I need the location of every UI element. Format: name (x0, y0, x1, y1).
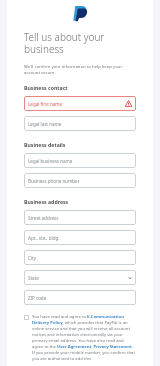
button[interactable]: Business phone number (24, 173, 136, 188)
staticText: Business address (24, 198, 69, 205)
button[interactable]: Legal first name (24, 96, 136, 111)
staticText: Tell us about your business (24, 30, 105, 56)
staticText: Apt., ste., bldg. (28, 235, 60, 241)
button[interactable]: ZIP code (24, 290, 136, 305)
staticText: ZIP code (28, 295, 47, 301)
staticText: We'll confirm your information to help k… (24, 63, 136, 75)
button[interactable]: Accept terms checkbox (24, 314, 136, 362)
button[interactable]: City (24, 250, 136, 265)
other: Accept terms checkbox (24, 315, 29, 320)
staticText: You have read and agree to E-Communicati… (32, 314, 136, 362)
button[interactable]: Apt., ste., bldg. (24, 230, 136, 245)
staticText: Street address (28, 215, 59, 221)
staticText: Business phone number (28, 178, 80, 184)
staticText: Business contact (24, 84, 68, 91)
staticText: Legal first name (28, 101, 63, 107)
staticText: City (28, 255, 36, 261)
button[interactable]: Legal last name (24, 116, 136, 131)
button[interactable]: Legal business name (24, 153, 136, 168)
button[interactable]: State (24, 270, 136, 285)
staticText: State (28, 275, 39, 281)
button[interactable]: Street address (24, 210, 136, 225)
staticText: Legal business name (28, 158, 73, 164)
staticText: Legal last name (28, 121, 62, 127)
staticText: Business details (24, 141, 66, 148)
